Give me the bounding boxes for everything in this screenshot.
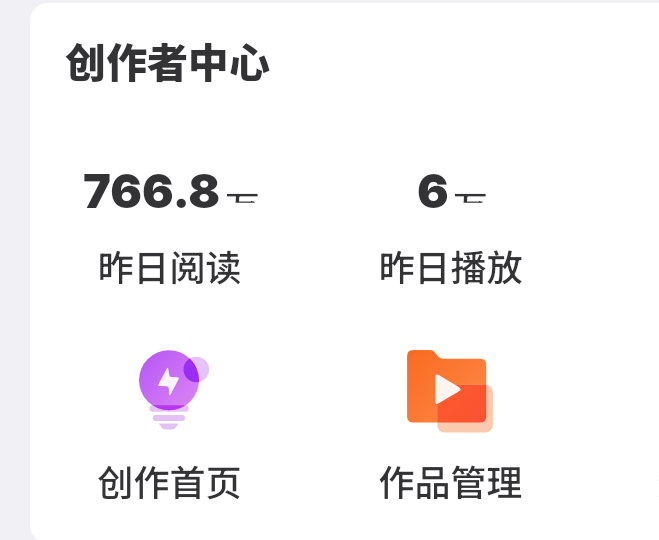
button[interactable]: 766.8 [34,162,304,291]
button[interactable]: 作品管理 [315,348,585,506]
button[interactable]: 创作者中心 [65,30,270,89]
staticText: 6 [417,162,449,219]
button[interactable]: 创作首页 [34,348,304,506]
other: 作品管理 [402,350,498,434]
staticText: 昨日阅读 [97,239,242,291]
staticText: 766.8 [83,162,221,219]
button[interactable]: 6 [315,162,585,291]
staticText: 作品管理 [378,454,523,506]
staticText: 万 [225,183,258,203]
staticText: 万 [453,183,486,203]
other: 创作首页 [121,350,217,434]
staticText: 创作者中心 [65,30,270,89]
staticText: 创作首页 [97,454,242,506]
staticText: 昨日播放 [378,239,523,291]
